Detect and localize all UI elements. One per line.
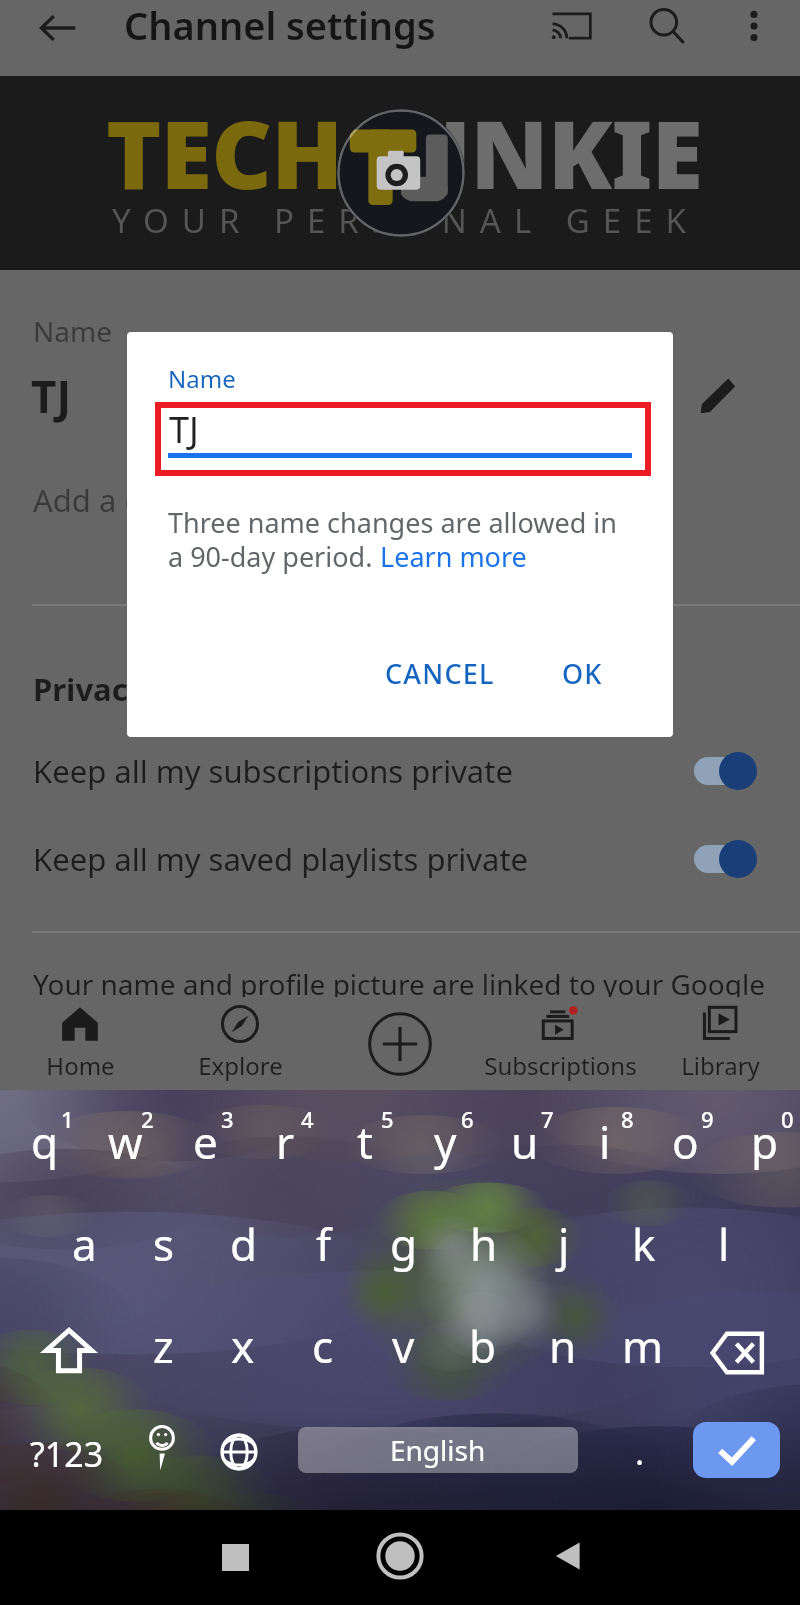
staticText: 5 (381, 1104, 394, 1134)
staticText: Channel settings (124, 0, 436, 51)
staticText: Keep all my saved playlists private (33, 838, 529, 880)
staticText: s (153, 1214, 175, 1274)
staticText: d (230, 1214, 258, 1274)
button[interactable]: Change profile picture (337, 109, 465, 237)
staticText: 6 (461, 1104, 474, 1134)
button[interactable]: 8 (560, 1090, 640, 1190)
button[interactable]: Learn more (380, 538, 527, 575)
button[interactable]: Cast (538, 0, 604, 59)
staticText: q (31, 1112, 59, 1172)
button[interactable]: Home (0, 997, 160, 1090)
button[interactable]: v (363, 1295, 443, 1397)
button[interactable]: g (364, 1193, 444, 1295)
staticText: Home (46, 1049, 115, 1082)
staticText: m (622, 1316, 664, 1376)
button[interactable]: Recents (204, 1526, 266, 1588)
staticText: a (72, 1214, 97, 1274)
button[interactable]: z (123, 1295, 203, 1397)
button[interactable]: Backspace (677, 1308, 797, 1398)
staticText: k (632, 1214, 656, 1274)
button[interactable]: Keep all my saved playlists private (0, 828, 800, 890)
staticText: t (357, 1112, 373, 1172)
button[interactable]: English (298, 1427, 578, 1473)
button[interactable]: h (444, 1193, 524, 1295)
button[interactable]: . (600, 1394, 680, 1510)
staticText: 2 (141, 1104, 154, 1134)
staticText: 1 (61, 1104, 74, 1134)
button[interactable]: m (603, 1295, 683, 1397)
button[interactable]: 2 (80, 1090, 160, 1190)
button[interactable]: Back (535, 1525, 597, 1587)
staticText: YOUR PERSONAL GEEK (112, 198, 699, 243)
staticText: u (511, 1112, 539, 1172)
button[interactable]: 5 (320, 1090, 400, 1190)
button[interactable]: 3 (160, 1090, 240, 1190)
button[interactable]: Home (369, 1525, 431, 1587)
button[interactable]: b (443, 1295, 523, 1397)
staticText: Explore (198, 1049, 283, 1082)
button[interactable]: Edit name (688, 362, 752, 426)
button[interactable]: Shift (9, 1305, 129, 1395)
button[interactable]: Keep all my subscriptions private (0, 740, 800, 802)
staticText: l (718, 1214, 730, 1274)
button[interactable]: Create (320, 997, 480, 1090)
staticText: Name (33, 312, 112, 350)
staticText: English (390, 1431, 486, 1469)
button[interactable]: 6 (400, 1090, 480, 1190)
button[interactable]: Explore (160, 997, 320, 1090)
button[interactable]: Search (634, 0, 700, 60)
staticText: OK (562, 655, 603, 692)
button[interactable]: x (203, 1295, 283, 1397)
staticText: g (390, 1214, 418, 1274)
button[interactable]: Library (640, 997, 800, 1090)
staticText (343, 89, 368, 217)
button[interactable]: n (523, 1295, 603, 1397)
button[interactable]: OK (542, 641, 623, 705)
staticText: Privacy (33, 668, 146, 710)
button[interactable]: l (684, 1193, 764, 1295)
staticText: 9 (701, 1104, 714, 1134)
staticText: Subscriptions (484, 1049, 637, 1082)
staticText: e (193, 1112, 218, 1172)
button[interactable]: d (204, 1193, 284, 1295)
button[interactable]: c (283, 1295, 363, 1397)
button[interactable]: Emoji (124, 1406, 200, 1492)
staticText: a 90-day period. (168, 538, 380, 575)
button[interactable]: ?123 (11, 1411, 123, 1497)
button[interactable]: 1 (0, 1090, 80, 1190)
button[interactable]: CANCEL (365, 641, 515, 705)
button[interactable]: 0 (720, 1090, 800, 1190)
button[interactable]: k (604, 1193, 684, 1295)
button[interactable]: 4 (240, 1090, 320, 1190)
staticText: b (469, 1316, 497, 1376)
staticText: p (751, 1112, 779, 1172)
staticText: x (231, 1316, 255, 1376)
staticText: 8 (621, 1104, 634, 1134)
button[interactable]: s (124, 1193, 204, 1295)
staticText: 7 (541, 1104, 554, 1134)
button[interactable]: Back (24, 0, 92, 62)
staticText: Library (681, 1049, 760, 1082)
button[interactable]: a (44, 1193, 124, 1295)
button[interactable]: 7 (480, 1090, 560, 1190)
staticText: Keep all my subscriptions private (33, 750, 513, 792)
button[interactable]: Subscriptions (480, 997, 640, 1090)
staticText: h (470, 1214, 498, 1274)
staticText: ?123 (30, 1431, 104, 1477)
staticText: Name (168, 362, 236, 395)
staticText: v (392, 1316, 415, 1376)
button[interactable]: More options (722, 0, 786, 58)
button[interactable]: 9 (640, 1090, 720, 1190)
staticText: i (599, 1112, 611, 1172)
button[interactable]: Change language (201, 1409, 277, 1495)
staticText: 4 (301, 1104, 314, 1134)
button[interactable]: Name (0, 270, 800, 500)
staticText: CANCEL (385, 655, 495, 692)
staticText: r (276, 1112, 295, 1172)
staticText: j (558, 1214, 570, 1274)
button[interactable]: j (524, 1193, 604, 1295)
button[interactable]: f (284, 1193, 364, 1295)
button[interactable]: Enter (693, 1422, 780, 1478)
staticText: 0 (781, 1104, 794, 1134)
staticText: y (434, 1112, 457, 1172)
